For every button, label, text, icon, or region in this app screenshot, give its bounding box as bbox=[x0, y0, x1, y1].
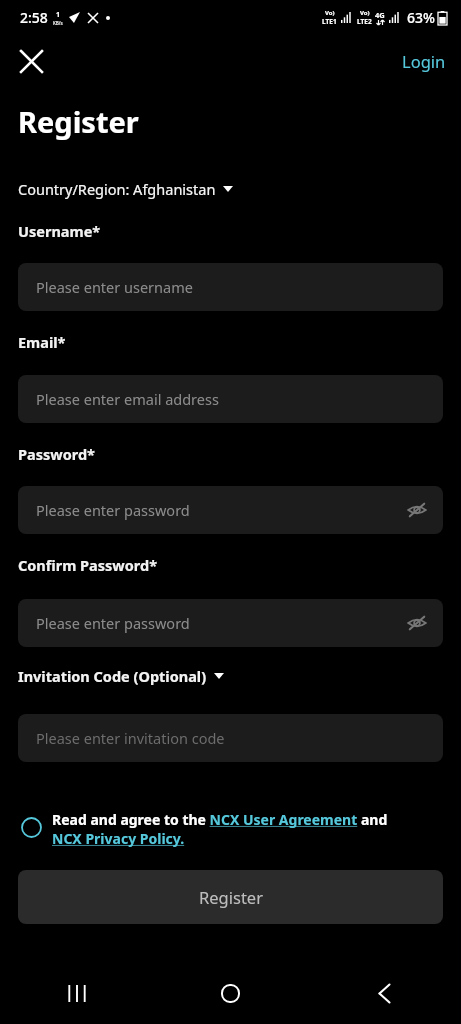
staticText: Email* bbox=[18, 332, 66, 352]
staticText: Vo) bbox=[360, 9, 370, 17]
staticText: 4G bbox=[375, 10, 385, 20]
staticText: NCX Privacy Policy. bbox=[52, 829, 185, 848]
button[interactable]: Home bbox=[153, 962, 307, 1024]
staticText: KB/s bbox=[53, 20, 63, 26]
button[interactable]: Recent apps bbox=[0, 962, 153, 1024]
button[interactable]: Please enter email address bbox=[18, 375, 443, 423]
staticText: Please enter password bbox=[36, 500, 190, 520]
button[interactable]: Back bbox=[307, 962, 461, 1024]
staticText: Please enter password bbox=[36, 613, 190, 633]
staticText: Please enter invitation code bbox=[36, 728, 225, 748]
staticText: Register bbox=[199, 886, 263, 908]
staticText: Login bbox=[402, 50, 446, 72]
staticText: Register bbox=[18, 102, 139, 141]
staticText: 2:58 bbox=[20, 8, 48, 27]
button[interactable]: Please enter password bbox=[18, 599, 443, 647]
staticText: Username* bbox=[18, 221, 101, 241]
staticText: Please enter email address bbox=[36, 389, 219, 409]
button[interactable]: Show password bbox=[399, 605, 435, 641]
staticText: LTE1 bbox=[322, 17, 337, 26]
staticText: 1 bbox=[56, 10, 61, 20]
staticText: 63% bbox=[407, 8, 435, 27]
button[interactable]: Country/Region: Afghanistan bbox=[18, 179, 233, 199]
button[interactable]: Please enter username bbox=[18, 263, 443, 311]
button[interactable]: Invitation Code (Optional) bbox=[18, 666, 224, 686]
staticText: Password* bbox=[18, 444, 95, 464]
staticText: LTE2 bbox=[357, 17, 372, 26]
staticText: Confirm Password* bbox=[18, 555, 158, 575]
button[interactable]: Please enter password bbox=[18, 486, 443, 534]
button[interactable]: Show password bbox=[399, 492, 435, 528]
staticText: Please enter username bbox=[36, 277, 193, 297]
button[interactable]: Register bbox=[18, 870, 443, 924]
staticText: Invitation Code (Optional) bbox=[18, 666, 207, 686]
button[interactable]: Please enter invitation code bbox=[18, 714, 443, 762]
button[interactable]: Close bbox=[8, 38, 54, 84]
button[interactable]: Login bbox=[398, 44, 450, 78]
staticText: Read and agree to the NCX User Agreement… bbox=[52, 810, 388, 829]
staticText: Vo) bbox=[325, 9, 335, 17]
staticText: Country/Region: Afghanistan bbox=[18, 179, 216, 199]
button[interactable]: Agree to terms bbox=[12, 808, 50, 846]
